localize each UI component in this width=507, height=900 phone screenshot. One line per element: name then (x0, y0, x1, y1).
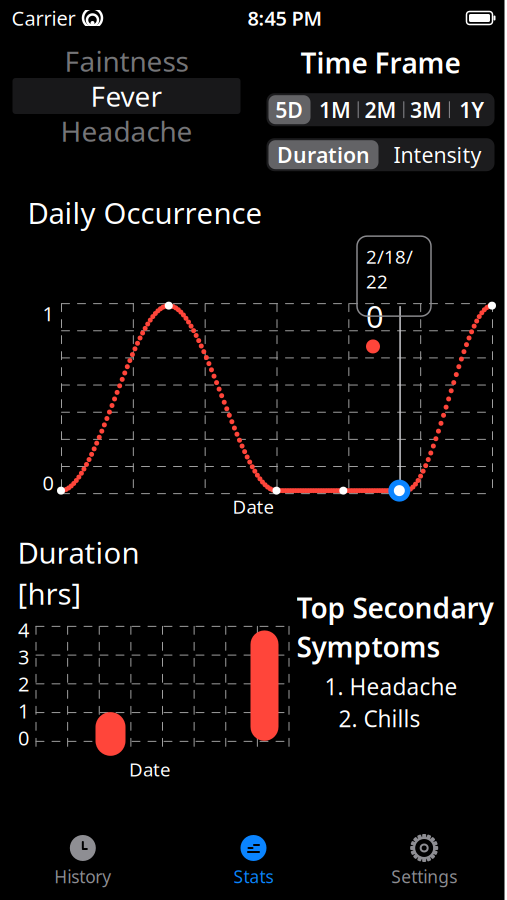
staticText: 3 (18, 644, 29, 670)
staticText: Duration (277, 140, 370, 169)
staticText: Stats (233, 865, 273, 888)
button[interactable]: Duration (266, 138, 380, 171)
staticText: 0 (18, 725, 29, 751)
button[interactable]: Fever (12, 78, 240, 114)
button[interactable]: History (0, 834, 168, 888)
staticText: 1Y (459, 95, 484, 124)
staticText: [hrs] (17, 574, 81, 613)
button[interactable]: 1M (312, 93, 358, 126)
staticText: 2 (18, 671, 29, 697)
staticText: 8:45 PM (247, 5, 322, 31)
staticText: Intensity (393, 140, 481, 169)
staticText: Faintness (64, 42, 188, 80)
staticText: 0 (366, 296, 384, 336)
staticText: 1 (18, 698, 29, 724)
button[interactable]: 3M (403, 93, 449, 126)
staticText: 1M (319, 95, 351, 124)
staticText: 2M (364, 95, 396, 124)
staticText: Settings (391, 865, 457, 888)
staticText: History (54, 865, 111, 888)
button[interactable]: Stats (168, 834, 339, 888)
staticText: Date (232, 494, 274, 519)
staticText: Headache (60, 112, 192, 150)
staticText: Time Frame (300, 44, 460, 81)
staticText: Symptoms (296, 628, 440, 665)
staticText: Carrier (11, 5, 75, 31)
staticText: 2/18/22 (366, 244, 413, 294)
staticText: Top Secondary (296, 589, 493, 626)
button[interactable]: 1Y (449, 93, 494, 126)
button[interactable]: 2M (358, 93, 403, 126)
staticText: 0 (42, 470, 53, 496)
staticText: 1 (42, 300, 53, 327)
staticText: 4 (18, 617, 29, 643)
button[interactable]: Faintness (12, 44, 240, 78)
staticText: Daily Occurrence (27, 193, 262, 232)
staticText: Date (129, 757, 171, 782)
button[interactable]: 5D (266, 93, 312, 126)
staticText: Duration (17, 533, 139, 572)
button[interactable]: Headache (12, 114, 240, 148)
staticText: 1. Headache (324, 671, 457, 701)
staticText: 5D (275, 95, 303, 124)
staticText: 3M (410, 95, 442, 124)
staticText: 2. Chills (338, 703, 420, 733)
button[interactable]: Intensity (380, 138, 494, 171)
button[interactable]: Settings (339, 834, 507, 888)
staticText: Fever (90, 77, 162, 115)
